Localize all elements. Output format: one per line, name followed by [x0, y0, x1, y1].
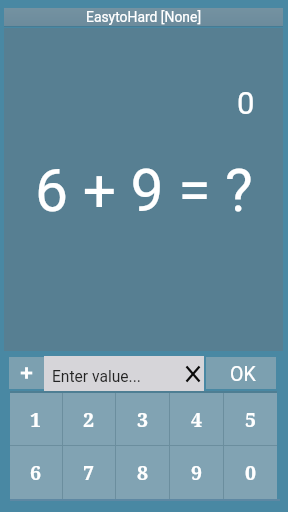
button[interactable]: Change operation	[9, 357, 44, 389]
staticText: 2	[83, 406, 95, 433]
button[interactable]: 6	[10, 446, 62, 499]
staticText: 6	[30, 459, 42, 486]
staticText: 4	[191, 406, 203, 433]
button[interactable]: 0	[224, 446, 277, 499]
button[interactable]: 9	[170, 446, 223, 499]
staticText: 6 + 9 = ?	[35, 156, 253, 225]
staticText: 7	[83, 459, 95, 486]
button[interactable]: EasytoHard [None]	[4, 8, 283, 26]
button[interactable]: Clear entry	[186, 366, 200, 382]
button[interactable]: 4	[170, 393, 223, 445]
button[interactable]: 1	[10, 393, 62, 445]
staticText: EasytoHard [None]	[86, 9, 202, 25]
staticText: 3	[137, 406, 149, 433]
button[interactable]: 2	[63, 393, 115, 445]
button[interactable]: 7	[63, 446, 115, 499]
staticText: 0	[245, 459, 257, 486]
staticText: OK	[230, 363, 256, 386]
staticText: 1	[30, 406, 42, 433]
button[interactable]: 3	[116, 393, 169, 445]
staticText: Enter value...	[52, 368, 141, 386]
staticText: 0	[237, 85, 255, 121]
button[interactable]: 5	[224, 393, 277, 445]
button[interactable]: OK	[206, 357, 276, 389]
button[interactable]: 8	[116, 446, 169, 499]
staticText: 8	[137, 459, 149, 486]
staticText: 5	[245, 406, 257, 433]
staticText: 9	[191, 459, 203, 486]
button[interactable]: Enter value...	[44, 356, 204, 391]
